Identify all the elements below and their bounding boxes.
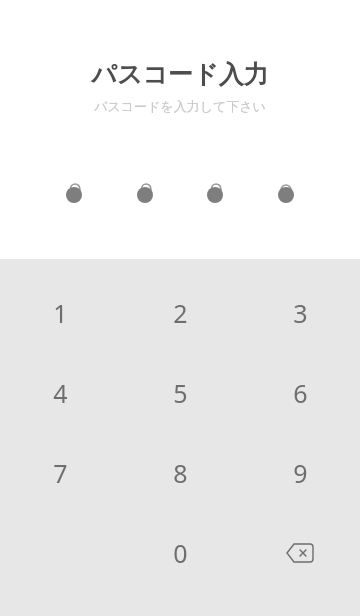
button[interactable]: 5 (152, 365, 208, 421)
staticText: 1 (53, 296, 68, 330)
staticText: 7 (53, 456, 68, 490)
button[interactable]: 0 (152, 525, 208, 581)
button[interactable]: 9 (272, 445, 328, 501)
button[interactable]: 4 (32, 365, 88, 421)
staticText: 2 (173, 296, 188, 330)
staticText: パスコードを入力して下さい (0, 98, 360, 114)
staticText: 9 (293, 456, 308, 490)
staticText: パスコード入力 (0, 59, 360, 90)
button[interactable]: 8 (152, 445, 208, 501)
button[interactable]: 6 (272, 365, 328, 421)
staticText: 8 (173, 456, 188, 490)
button[interactable]: 3 (272, 285, 328, 341)
button[interactable]: 1 (32, 285, 88, 341)
button[interactable]: 7 (32, 445, 88, 501)
staticText: 4 (53, 376, 68, 410)
button[interactable]: Backspace (272, 525, 328, 581)
staticText: 0 (173, 536, 188, 570)
button[interactable]: 2 (152, 285, 208, 341)
staticText: 6 (293, 376, 308, 410)
staticText: 3 (293, 296, 308, 330)
staticText: 5 (173, 376, 188, 410)
